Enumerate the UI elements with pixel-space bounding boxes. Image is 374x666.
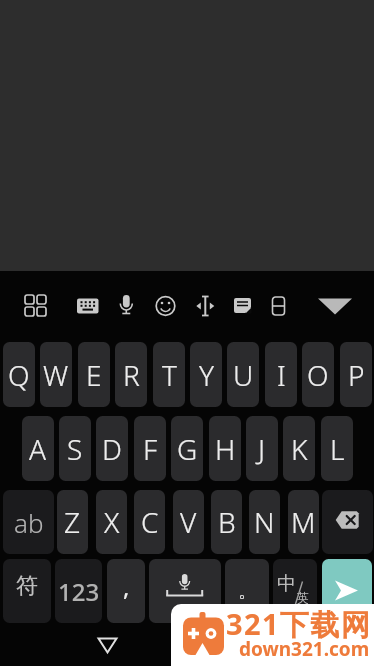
staticText: B [218,503,236,541]
staticText: R [123,356,140,394]
staticText: 符 [16,572,38,600]
staticText: S [67,430,83,468]
button[interactable]: , [107,559,145,623]
button[interactable]: L [321,416,353,481]
button[interactable]: 中 [273,559,317,623]
staticText: 123 [58,575,100,608]
button[interactable] [322,559,372,623]
button[interactable]: 。 [225,559,269,623]
staticText: , [123,570,130,603]
staticText: 321下载网 [226,604,372,644]
staticText: I [277,356,286,394]
button[interactable]: J [246,416,278,481]
staticText: down321.com [239,636,370,662]
staticText: T [162,356,177,394]
button[interactable] [83,626,131,666]
button[interactable]: A [22,416,54,481]
button[interactable]: E [78,342,110,407]
staticText: F [143,430,158,468]
button[interactable]: W [40,342,72,407]
button[interactable]: F [134,416,166,481]
staticText: 。 [238,580,256,603]
button[interactable]: Z [57,490,88,554]
button[interactable]: U [227,342,259,407]
staticText: Y [199,356,214,394]
button[interactable]: S [59,416,91,481]
staticText: P [348,356,365,394]
button[interactable]: P [340,342,372,407]
staticText: 英 [297,590,309,605]
button[interactable]: Y [190,342,222,407]
button[interactable]: T [153,342,185,407]
button[interactable]: O [302,342,334,407]
staticText: N [254,503,275,541]
button[interactable]: 符 [3,559,51,623]
staticText: G [177,430,198,468]
button[interactable]: R [115,342,147,407]
button[interactable] [0,271,374,342]
staticText: C [141,503,159,541]
button[interactable] [149,559,221,623]
staticText: ab [14,505,44,540]
button[interactable]: M [288,490,319,554]
staticText: L [330,430,345,468]
staticText: A [29,430,47,468]
button[interactable]: ab [3,490,54,554]
staticText: Q [8,356,30,394]
button[interactable]: H [209,416,241,481]
staticText: O [307,356,329,394]
button[interactable]: G [171,416,203,481]
staticText: Z [64,503,81,541]
staticText: X [104,503,120,541]
staticText: M [291,503,316,541]
button[interactable]: K [283,416,315,481]
staticText: V [180,503,197,541]
staticText: 中 [277,572,296,596]
button[interactable]: I [265,342,297,407]
button[interactable]: V [173,490,204,554]
staticText: U [233,356,254,394]
staticText: W [43,356,69,394]
button[interactable]: B [211,490,242,554]
button[interactable]: Q [3,342,35,407]
button[interactable]: 123 [55,559,102,623]
button[interactable]: X [96,490,127,554]
staticText: H [215,430,236,468]
button[interactable]: D [96,416,128,481]
staticText: K [291,430,308,468]
button[interactable]: C [134,490,165,554]
button[interactable] [322,490,373,554]
staticText: D [102,430,122,468]
button[interactable]: N [249,490,280,554]
staticText: E [86,356,102,394]
staticText: J [258,430,266,468]
